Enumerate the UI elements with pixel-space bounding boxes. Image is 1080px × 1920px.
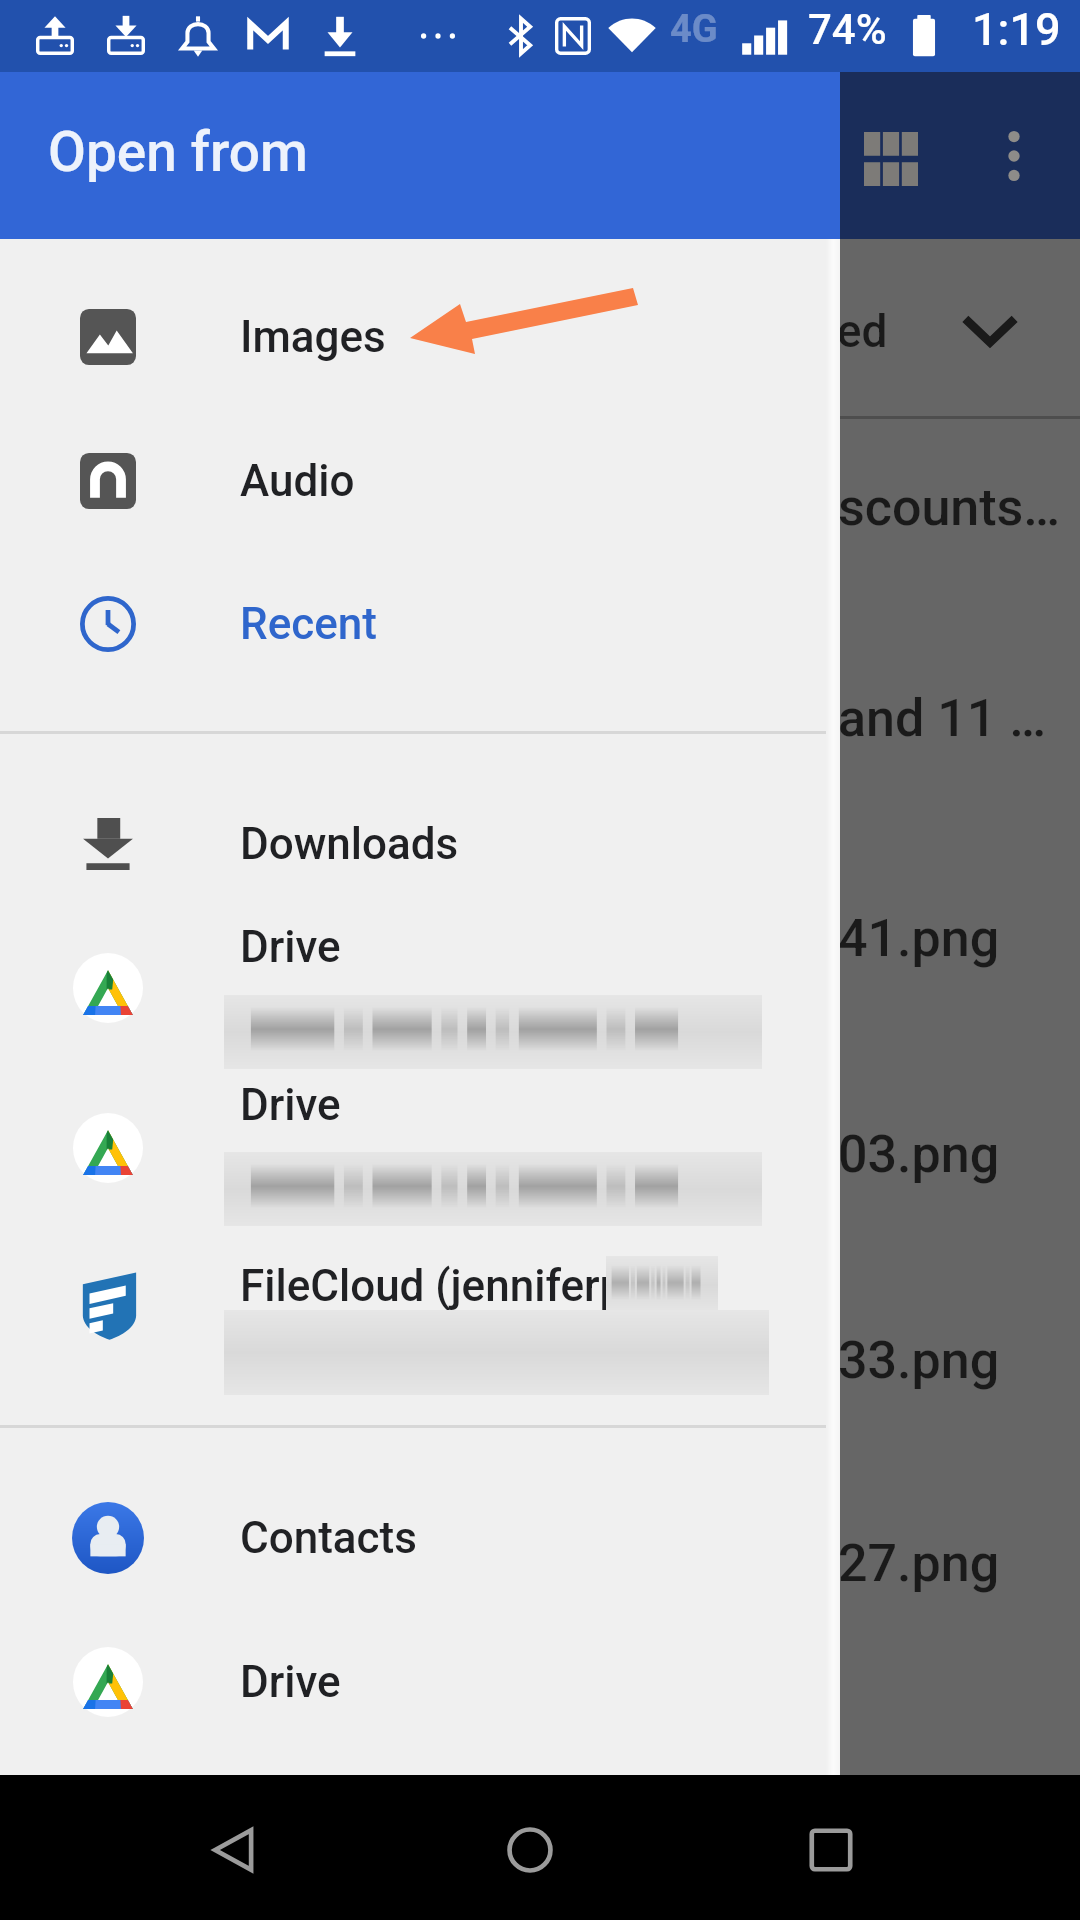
staticText: 1:19 <box>972 3 1061 56</box>
staticText: 03.png <box>838 1124 1000 1185</box>
staticText: Drive <box>240 1079 341 1131</box>
staticText: Drive <box>240 1656 341 1708</box>
staticText: 33.png <box>838 1330 1000 1391</box>
staticText: 4G <box>670 7 718 52</box>
staticText: 74% <box>808 5 887 54</box>
staticText: and 11 … <box>838 688 1047 749</box>
button[interactable]: Drive <box>0 875 840 1019</box>
staticText: Audio <box>240 455 355 507</box>
button[interactable]: Recents <box>761 1780 901 1920</box>
staticText: 41.png <box>838 908 1000 969</box>
button[interactable]: Modified <box>690 296 888 366</box>
staticText: FileCloud (jenniferp <box>240 1260 625 1312</box>
button[interactable]: Home <box>460 1780 600 1920</box>
button[interactable]: Drive <box>0 1610 840 1754</box>
button[interactable]: Back <box>165 1780 305 1920</box>
button[interactable]: Audio <box>0 409 840 553</box>
staticText: Open from <box>48 120 308 184</box>
staticText: Downloads <box>240 818 459 870</box>
staticText: Drive <box>240 921 341 973</box>
staticText: Modified <box>706 304 888 358</box>
button[interactable]: Drive <box>0 1033 840 1177</box>
button[interactable]: Grid view <box>847 115 935 203</box>
button[interactable]: Recent <box>0 552 840 696</box>
staticText: Images <box>240 311 386 363</box>
staticText: scounts… <box>838 477 1061 538</box>
button[interactable]: FileCloud (jenniferp <box>0 1214 840 1358</box>
button[interactable]: Sort <box>962 302 1018 358</box>
button[interactable]: More options <box>970 112 1058 200</box>
staticText: Recent <box>240 598 377 650</box>
button[interactable]: Images <box>0 265 840 409</box>
button[interactable]: Contacts <box>0 1466 840 1610</box>
staticText: Contacts <box>240 1512 417 1564</box>
button[interactable]: Downloads <box>0 772 840 916</box>
staticText: 27.png <box>838 1533 1000 1594</box>
